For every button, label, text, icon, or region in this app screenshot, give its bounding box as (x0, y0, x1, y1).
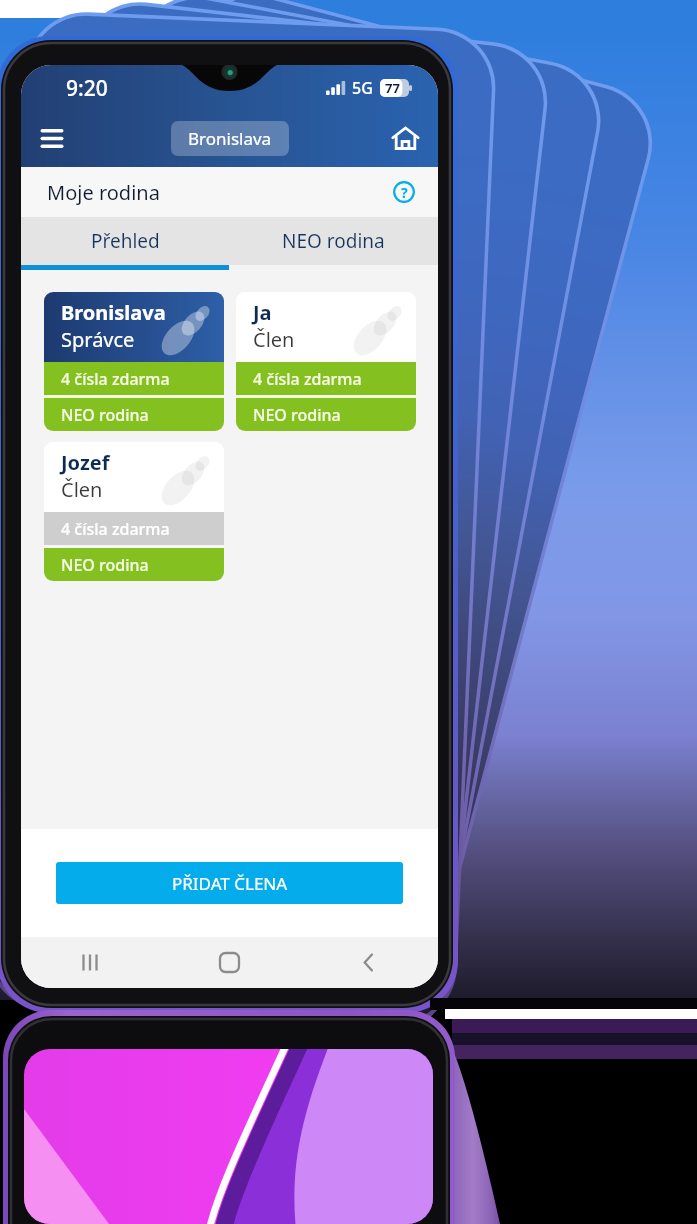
button[interactable]: Jozef (44, 442, 224, 581)
staticText: ? (401, 183, 408, 202)
button[interactable]: NEO rodina (229, 217, 438, 265)
staticText: Bronislava (61, 299, 166, 326)
staticText: Správce (61, 326, 135, 353)
button[interactable]: Home (382, 115, 428, 161)
button[interactable]: Bronislava (171, 121, 289, 156)
staticText: PŘIDAT ČLENA (172, 872, 288, 895)
staticText: Moje rodina (47, 179, 160, 206)
staticText: Člen (253, 326, 295, 353)
staticText: Člen (61, 476, 103, 503)
button[interactable]: Přehled (21, 217, 229, 265)
staticText: NEO rodina (253, 404, 341, 426)
button[interactable]: Ja (236, 292, 416, 431)
button[interactable]: Back (299, 937, 438, 988)
staticText: 5G (352, 77, 373, 99)
staticText: Ja (253, 299, 272, 326)
staticText: 4 čísla zdarma (253, 368, 362, 390)
staticText: Přehled (91, 228, 160, 254)
staticText: Jozef (61, 449, 110, 476)
button[interactable]: Home (160, 937, 299, 988)
staticText: NEO rodina (61, 554, 149, 576)
staticText: NEO rodina (282, 228, 385, 254)
button[interactable]: Bronislava (44, 292, 224, 431)
button[interactable]: PŘIDAT ČLENA (56, 862, 403, 904)
staticText: Bronislava (188, 127, 272, 150)
button[interactable]: Menu (29, 115, 75, 161)
button[interactable]: Recent apps (21, 937, 160, 988)
staticText: 4 čísla zdarma (61, 518, 170, 540)
staticText: NEO rodina (61, 404, 149, 426)
button[interactable]: Help (386, 174, 422, 210)
staticText: 77 (385, 79, 400, 97)
staticText: 9:20 (66, 74, 108, 103)
staticText: 4 čísla zdarma (61, 368, 170, 390)
